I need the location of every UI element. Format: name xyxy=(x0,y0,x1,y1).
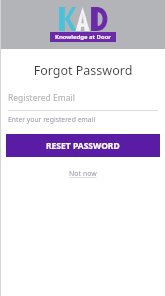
other: KAD logo xyxy=(57,7,109,31)
button[interactable]: RESET PASSWORD xyxy=(6,134,160,157)
button[interactable]: Registered Email xyxy=(8,92,158,111)
staticText: Enter your registered email xyxy=(8,115,96,124)
button[interactable]: Not now xyxy=(63,166,103,182)
staticText: Knowledge at Door xyxy=(55,33,111,41)
staticText: Forgot Password xyxy=(0,62,166,79)
staticText: RESET PASSWORD xyxy=(46,140,120,152)
staticText: Not now xyxy=(69,169,97,179)
staticText: Registered Email xyxy=(8,92,75,104)
